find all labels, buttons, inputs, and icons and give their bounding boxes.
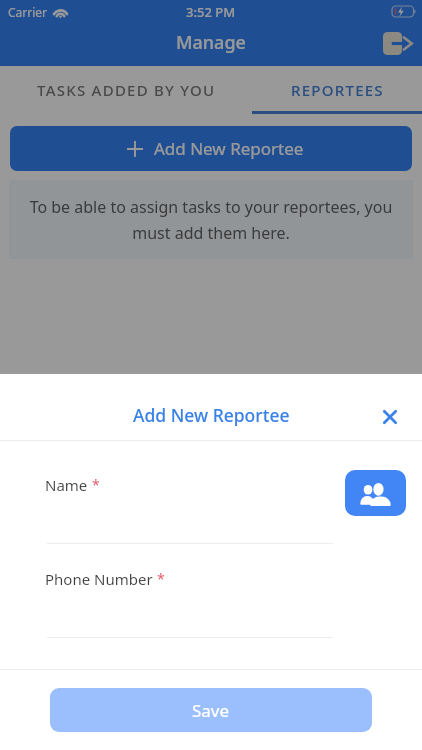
staticText: Add New Reportee (154, 137, 304, 160)
staticText: Manage (176, 30, 246, 55)
staticText: Save (192, 699, 230, 722)
button[interactable]: Add New Reportee (10, 126, 412, 171)
staticText: * (92, 475, 100, 494)
button[interactable]: TASKS ADDED BY YOU (0, 66, 252, 114)
button[interactable]: Close (373, 400, 407, 434)
staticText: To be able to assign tasks to your repor… (29, 196, 393, 244)
staticText: Name (45, 475, 88, 495)
staticText: * (157, 569, 165, 588)
button[interactable]: Logout (380, 26, 414, 60)
button[interactable]: REPORTEES (252, 66, 422, 114)
staticText: REPORTEES (291, 80, 384, 100)
staticText: Carrier (8, 4, 48, 20)
staticText: Phone Number (45, 569, 153, 589)
staticText: TASKS ADDED BY YOU (37, 80, 216, 100)
button[interactable]: Pick from contacts (345, 470, 406, 516)
staticText: Add New Reportee (133, 403, 290, 427)
staticText: 3:52 PM (186, 3, 236, 21)
button[interactable]: Save (50, 688, 372, 732)
